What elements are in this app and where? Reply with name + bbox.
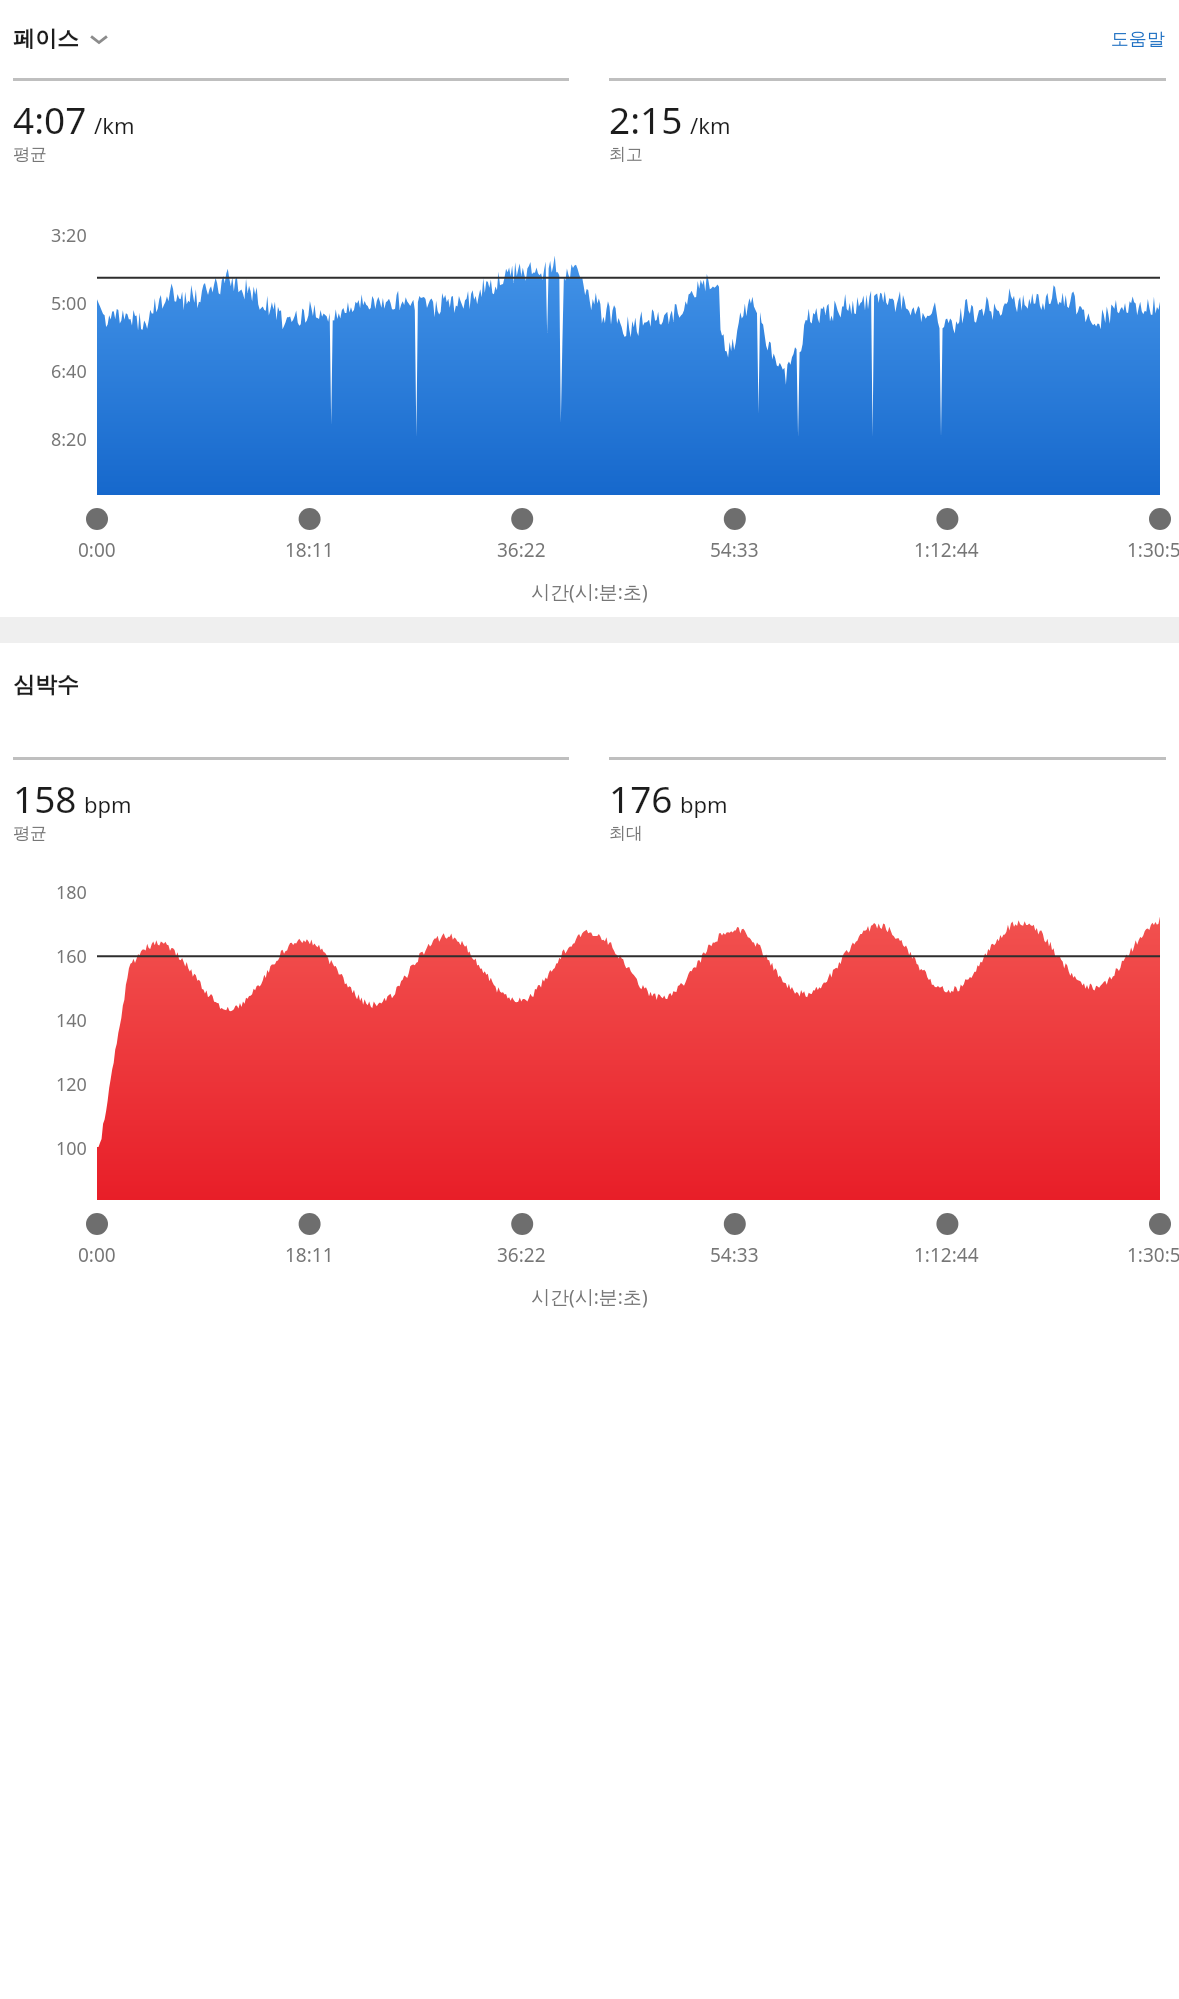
staticText: 3:20 (51, 223, 87, 248)
button[interactable]: 페이스 (0, 19, 122, 59)
staticText: 시간(시:분:초) (531, 1284, 648, 1310)
staticText: /km (690, 110, 731, 140)
staticText: 18:11 (285, 1242, 334, 1268)
staticText: bpm (84, 789, 132, 819)
staticText: 100 (56, 1136, 87, 1161)
staticText: 160 (56, 944, 87, 969)
staticText: 심박수 (13, 671, 79, 699)
staticText: 최고 (609, 144, 643, 165)
button[interactable]: 4:07 (13, 78, 569, 165)
staticText: 0:00 (78, 537, 116, 563)
staticText: 1:30:55 (1127, 1242, 1179, 1268)
staticText: 120 (56, 1072, 87, 1097)
staticText: 2:15 (609, 94, 683, 144)
staticText: 평균 (13, 823, 47, 844)
staticText: 54:33 (710, 1242, 759, 1268)
staticText: 5:00 (51, 291, 87, 316)
staticText: 6:40 (51, 359, 87, 384)
button[interactable]: 심박수 (0, 665, 103, 705)
staticText: 4:07 (13, 94, 87, 144)
button[interactable]: 도움말 (1097, 16, 1179, 63)
button[interactable]: 176 (609, 757, 1166, 844)
staticText: 페이스 (13, 25, 79, 53)
staticText: 0:00 (78, 1242, 116, 1268)
staticText: 평균 (13, 144, 47, 165)
staticText: 180 (56, 880, 87, 905)
staticText: /km (94, 110, 135, 140)
staticText: 8:20 (51, 427, 87, 452)
staticText: 최대 (609, 823, 643, 844)
button[interactable]: 158 (13, 757, 569, 844)
staticText: 1:12:44 (914, 537, 979, 563)
staticText: 1:30:55 (1127, 537, 1179, 563)
staticText: 140 (56, 1008, 87, 1033)
staticText: 18:11 (285, 537, 334, 563)
staticText: 도움말 (1111, 28, 1165, 51)
staticText: 1:12:44 (914, 1242, 979, 1268)
staticText: 시간(시:분:초) (531, 579, 648, 605)
other: Change metric (88, 28, 110, 50)
staticText: 54:33 (710, 537, 759, 563)
staticText: 176 (609, 773, 673, 823)
staticText: 158 (13, 773, 77, 823)
staticText: 36:22 (497, 537, 546, 563)
button[interactable]: 2:15 (609, 78, 1166, 165)
staticText: 36:22 (497, 1242, 546, 1268)
staticText: bpm (680, 789, 728, 819)
